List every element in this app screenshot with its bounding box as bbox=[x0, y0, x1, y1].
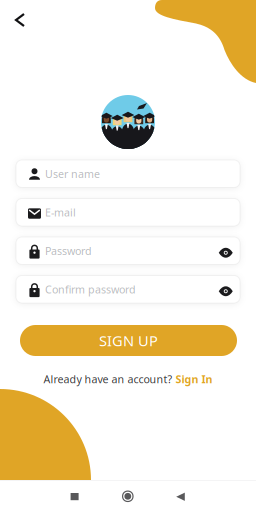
staticText: Confirm password bbox=[45, 282, 136, 296]
staticText: Sign In bbox=[175, 372, 212, 386]
button[interactable]: SIGN UP bbox=[20, 325, 237, 356]
button[interactable]: Back bbox=[0, 0, 37, 39]
button[interactable]: Already have an account? bbox=[0, 372, 256, 386]
button[interactable]: E-mail bbox=[16, 198, 240, 226]
staticText: E-mail bbox=[45, 205, 76, 219]
staticText: User name bbox=[45, 167, 100, 181]
button[interactable]: Confirm password bbox=[16, 275, 240, 303]
button[interactable]: User name bbox=[16, 160, 240, 187]
staticText: Already have an account? bbox=[43, 372, 172, 386]
staticText: SIGN UP bbox=[99, 331, 158, 350]
button[interactable]: Back bbox=[167, 484, 194, 510]
button[interactable]: Recents bbox=[62, 484, 88, 509]
staticText: Password bbox=[45, 244, 92, 258]
button[interactable]: Home bbox=[113, 481, 143, 511]
button[interactable]: Password bbox=[16, 237, 240, 264]
